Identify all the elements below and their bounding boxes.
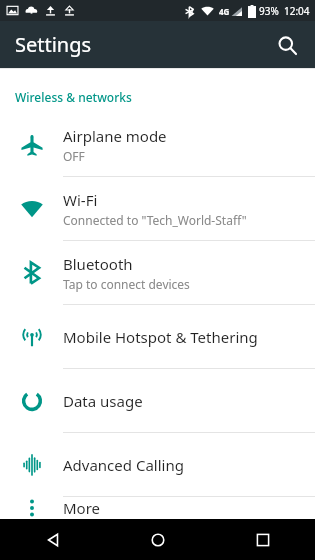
staticText: Mobile Hotspot & Tethering	[63, 327, 258, 347]
staticText: Tap to connect devices	[63, 276, 190, 292]
staticText: OFF	[63, 148, 85, 164]
staticText: 12:04	[284, 4, 310, 18]
button[interactable]: Search	[267, 25, 307, 65]
button[interactable]: Mobile Hotspot & Tethering	[0, 305, 315, 368]
staticText: More	[63, 498, 101, 518]
button[interactable]: Back	[0, 519, 105, 560]
staticText: Airplane mode	[63, 126, 167, 146]
button[interactable]: Recent apps	[210, 519, 315, 560]
button[interactable]: Home	[105, 519, 210, 560]
staticText: 93%	[259, 4, 279, 18]
staticText: Connected to "Tech_World-Staff"	[63, 212, 247, 228]
staticText: Wireless & networks	[15, 89, 132, 105]
staticText: Bluetooth	[63, 254, 133, 274]
staticText: Data usage	[63, 391, 143, 411]
staticText: Wi-Fi	[63, 190, 98, 210]
button[interactable]: Airplane mode	[0, 113, 315, 176]
button[interactable]: Advanced Calling	[0, 433, 315, 496]
staticText: Advanced Calling	[63, 455, 184, 475]
staticText: Settings	[15, 31, 92, 58]
button[interactable]: More	[0, 497, 315, 519]
button[interactable]: Data usage	[0, 369, 315, 432]
staticText: 4G	[219, 6, 230, 17]
button[interactable]: Bluetooth	[0, 241, 315, 304]
button[interactable]: Wi-Fi	[0, 177, 315, 240]
